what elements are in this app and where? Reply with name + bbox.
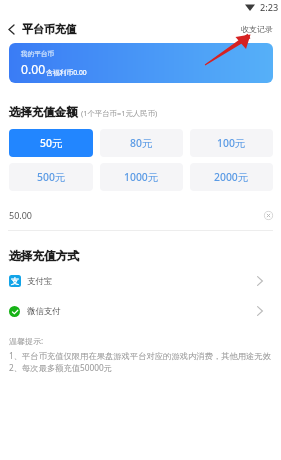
staticText: 微信支付 (27, 306, 61, 317)
button[interactable]: 50元 (9, 129, 93, 157)
button[interactable]: 100元 (190, 129, 273, 157)
staticText: 80元 (130, 136, 153, 150)
staticText: 选择充值方式 (9, 249, 80, 264)
staticText: (1个平台币=1元人民币) (81, 108, 158, 118)
staticText: 温馨提示: (9, 335, 44, 346)
button[interactable]: 2000元 (190, 163, 273, 191)
staticText: 平台币充值 (22, 23, 77, 37)
staticText: 收支记录 (241, 24, 273, 34)
staticText: 支付宝 (27, 276, 53, 287)
button[interactable]: 支 (0, 269, 281, 293)
staticText: 支 (11, 276, 19, 286)
staticText: 2、每次最多额充值50000元 (9, 362, 113, 373)
button[interactable]: 收支记录 (241, 24, 273, 34)
staticText: 1、平台币充值仅限用在果盘游戏平台对应的游戏内消费，其他用途无效 (9, 350, 271, 361)
staticText: 50元 (40, 136, 63, 150)
staticText: 含福利币0.00 (46, 68, 87, 77)
button[interactable]: 500元 (9, 163, 93, 191)
button[interactable]: 微信支付 (0, 299, 281, 323)
staticText: 2000元 (214, 170, 249, 184)
staticText: 2:23 (260, 1, 279, 14)
staticText: 50.00 (9, 209, 33, 221)
staticText: 100元 (217, 136, 246, 150)
button[interactable]: 1000元 (100, 163, 183, 191)
staticText: 选择充值金额 (9, 105, 78, 119)
staticText: 1000元 (124, 170, 159, 184)
button[interactable]: 我的平台币 (9, 43, 273, 83)
staticText: 0.00 (21, 61, 46, 78)
button[interactable]: Back (2, 20, 20, 38)
button[interactable]: Clear (264, 211, 273, 220)
staticText: 500元 (37, 170, 66, 184)
staticText: 我的平台币 (21, 50, 54, 58)
button[interactable]: 80元 (100, 129, 183, 157)
